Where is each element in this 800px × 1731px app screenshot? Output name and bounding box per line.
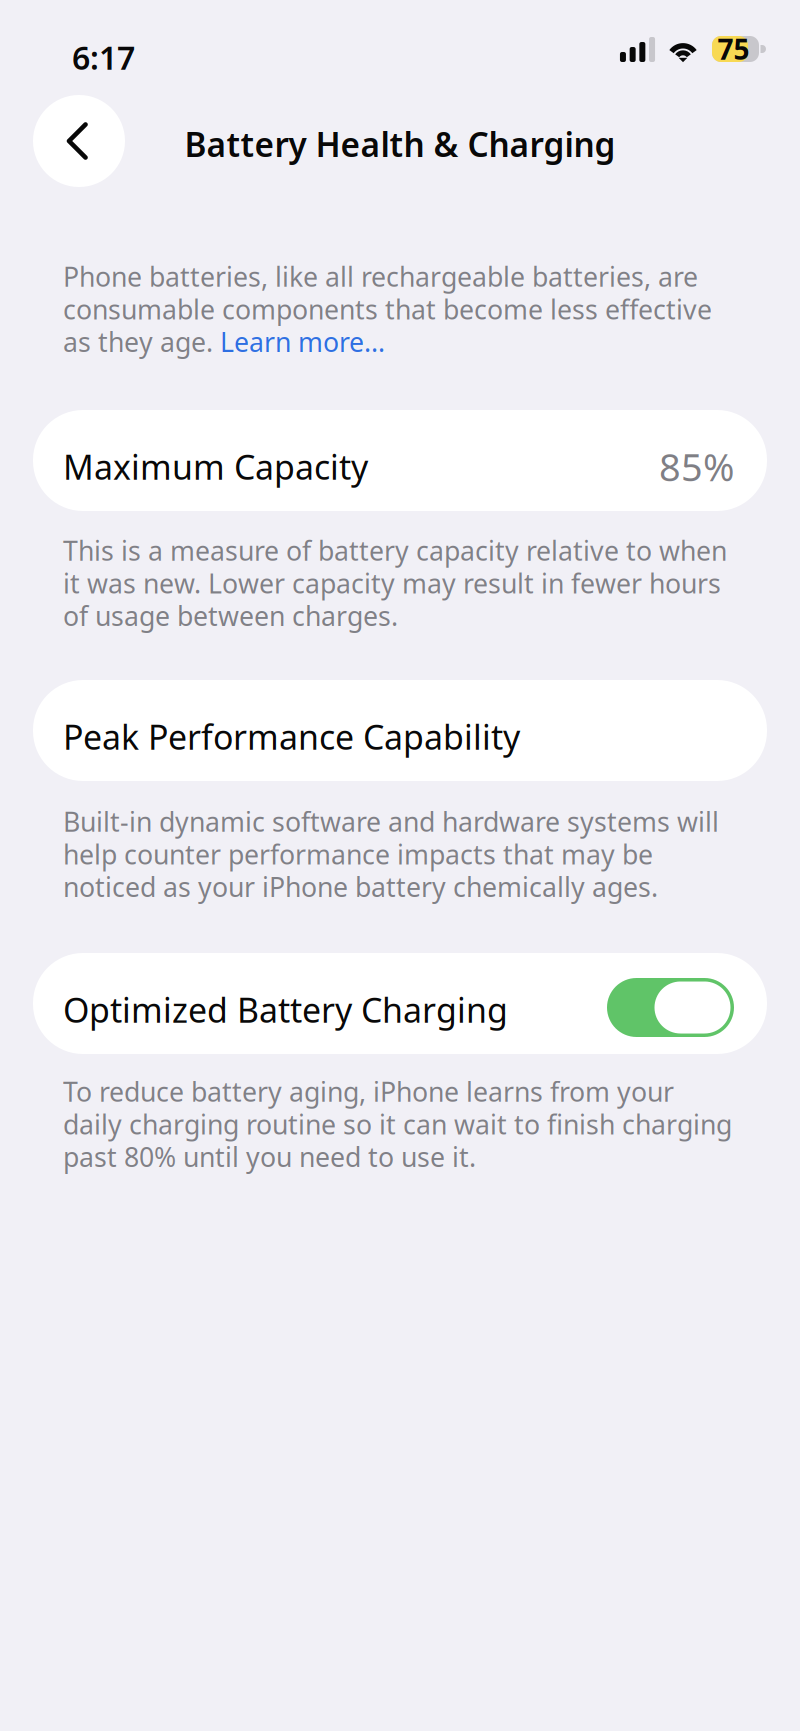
button[interactable]: Peak Performance Capability	[33, 680, 767, 781]
staticText: Phone batteries, like all rechargeable b…	[63, 260, 712, 358]
staticText: 85%	[659, 441, 734, 492]
staticText: Maximum Capacity	[63, 443, 368, 489]
staticText: Built-in dynamic software and hardware s…	[63, 805, 719, 903]
button[interactable]: Back	[33, 95, 125, 187]
button[interactable]: Optimized Battery Charging	[607, 978, 734, 1037]
staticText: To reduce battery aging, iPhone learns f…	[63, 1075, 732, 1173]
staticText: 75	[717, 30, 749, 68]
staticText: Battery Health & Charging	[184, 122, 615, 166]
button[interactable]: Maximum Capacity	[33, 410, 767, 511]
staticText: 6:17	[72, 36, 135, 78]
staticText: Peak Performance Capability	[63, 713, 520, 759]
staticText: Optimized Battery Charging	[63, 986, 508, 1032]
staticText: This is a measure of battery capacity re…	[63, 534, 727, 632]
